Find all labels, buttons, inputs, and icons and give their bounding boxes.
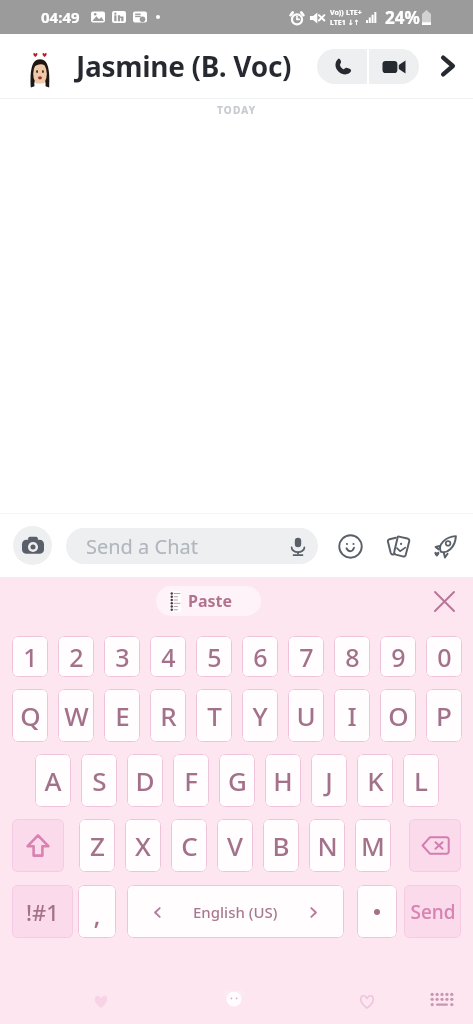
staticText: I bbox=[347, 698, 357, 733]
button[interactable]: Stickers bbox=[221, 985, 247, 1011]
button[interactable]: Themes bbox=[354, 985, 380, 1011]
staticText: C bbox=[181, 828, 198, 863]
button[interactable]: I bbox=[334, 689, 370, 742]
staticText: , bbox=[93, 897, 101, 932]
button[interactable]: L bbox=[403, 754, 439, 807]
button[interactable]: Favourites bbox=[88, 985, 114, 1011]
staticText: Vo)) bbox=[330, 8, 344, 18]
staticText: U bbox=[296, 698, 316, 733]
button[interactable]: Send a Chat bbox=[66, 528, 318, 564]
staticText: N bbox=[317, 828, 338, 863]
button[interactable]: F bbox=[173, 754, 209, 807]
staticText: O bbox=[388, 698, 409, 733]
button[interactable]: D bbox=[127, 754, 163, 807]
button[interactable]: More options bbox=[431, 49, 465, 83]
button[interactable]: X bbox=[125, 819, 161, 872]
staticText: Y bbox=[252, 698, 268, 733]
staticText: J bbox=[325, 763, 333, 798]
staticText: LTE1 bbox=[330, 18, 346, 28]
button[interactable]: U bbox=[288, 689, 324, 742]
button[interactable]: Games bbox=[430, 530, 462, 562]
button[interactable]: N bbox=[309, 819, 345, 872]
staticText: !#1 bbox=[26, 897, 59, 927]
button[interactable]: Video call bbox=[369, 49, 419, 84]
button[interactable]: Camera bbox=[13, 526, 52, 565]
staticText: M bbox=[361, 828, 385, 863]
staticText: H bbox=[273, 763, 293, 798]
staticText: P bbox=[436, 698, 452, 733]
button[interactable]: Q bbox=[12, 689, 48, 742]
button[interactable]: E bbox=[104, 689, 140, 742]
button[interactable]: C bbox=[171, 819, 207, 872]
staticText: E bbox=[115, 698, 130, 733]
staticText: TODAY bbox=[217, 103, 257, 117]
staticText: ↓↑ bbox=[348, 19, 360, 27]
button[interactable]: Call bbox=[317, 49, 367, 84]
button[interactable]: 4 bbox=[150, 636, 186, 677]
staticText: S bbox=[92, 763, 107, 798]
staticText: 1 bbox=[23, 640, 38, 674]
button[interactable]: Shift bbox=[12, 819, 64, 872]
button[interactable]: Z bbox=[79, 819, 115, 872]
staticText: D bbox=[135, 763, 155, 798]
button[interactable]: Paste bbox=[156, 586, 261, 616]
button[interactable]: R bbox=[150, 689, 186, 742]
staticText: 6 bbox=[253, 640, 268, 674]
staticText: Send a Chat bbox=[86, 533, 198, 560]
button[interactable]: B bbox=[263, 819, 299, 872]
button[interactable]: English (US) bbox=[127, 885, 344, 938]
button[interactable]: Y bbox=[242, 689, 278, 742]
button[interactable]: Voice note bbox=[284, 532, 312, 560]
button[interactable]: 0 bbox=[426, 636, 462, 677]
button[interactable] bbox=[357, 885, 397, 938]
button[interactable]: 2 bbox=[58, 636, 94, 677]
staticText: 04:49 bbox=[41, 7, 80, 27]
button[interactable]: 7 bbox=[288, 636, 324, 677]
staticText: Paste bbox=[188, 590, 233, 612]
button[interactable]: 3 bbox=[104, 636, 140, 677]
staticText: B bbox=[272, 828, 290, 863]
button[interactable]: Send bbox=[404, 885, 461, 938]
button[interactable]: J bbox=[311, 754, 347, 807]
staticText: Send bbox=[410, 899, 456, 925]
button[interactable]: 8 bbox=[334, 636, 370, 677]
button[interactable]: Emoji bbox=[334, 530, 366, 562]
staticText: G bbox=[228, 763, 247, 798]
button[interactable]: V bbox=[217, 819, 253, 872]
button[interactable]: M bbox=[355, 819, 391, 872]
button[interactable]: W bbox=[58, 689, 94, 742]
button[interactable]: G bbox=[219, 754, 255, 807]
staticText: X bbox=[135, 828, 151, 863]
staticText: L bbox=[414, 763, 428, 798]
staticText: 24% bbox=[385, 6, 420, 29]
button[interactable]: 6 bbox=[242, 636, 278, 677]
staticText: 3 bbox=[115, 640, 130, 674]
button[interactable]: S bbox=[81, 754, 117, 807]
staticText: Z bbox=[90, 828, 105, 863]
staticText: T bbox=[207, 698, 222, 733]
button[interactable]: Stickers bbox=[383, 530, 415, 562]
button[interactable]: Keyboard layout bbox=[428, 985, 456, 1013]
staticText: 7 bbox=[299, 640, 314, 674]
button[interactable]: Profile bbox=[17, 43, 63, 89]
button[interactable]: A bbox=[35, 754, 71, 807]
button[interactable]: 5 bbox=[196, 636, 232, 677]
button[interactable]: Backspace bbox=[409, 819, 461, 872]
button[interactable]: T bbox=[196, 689, 232, 742]
button[interactable]: !#1 bbox=[12, 885, 73, 938]
button[interactable]: H bbox=[265, 754, 301, 807]
button[interactable]: O bbox=[380, 689, 416, 742]
button[interactable]: Close keyboard bbox=[429, 586, 460, 617]
button[interactable]: 1 bbox=[12, 636, 48, 677]
staticText: Jasmine (B. Voc) bbox=[76, 47, 292, 85]
button[interactable]: 9 bbox=[380, 636, 416, 677]
staticText: 0 bbox=[437, 640, 452, 674]
staticText: K bbox=[367, 763, 384, 798]
staticText: 2 bbox=[69, 640, 84, 674]
staticText: F bbox=[184, 763, 198, 798]
staticText: A bbox=[44, 763, 62, 798]
staticText: 8 bbox=[345, 640, 360, 674]
button[interactable]: K bbox=[357, 754, 393, 807]
button[interactable]: P bbox=[426, 689, 462, 742]
button[interactable]: , bbox=[78, 885, 116, 938]
